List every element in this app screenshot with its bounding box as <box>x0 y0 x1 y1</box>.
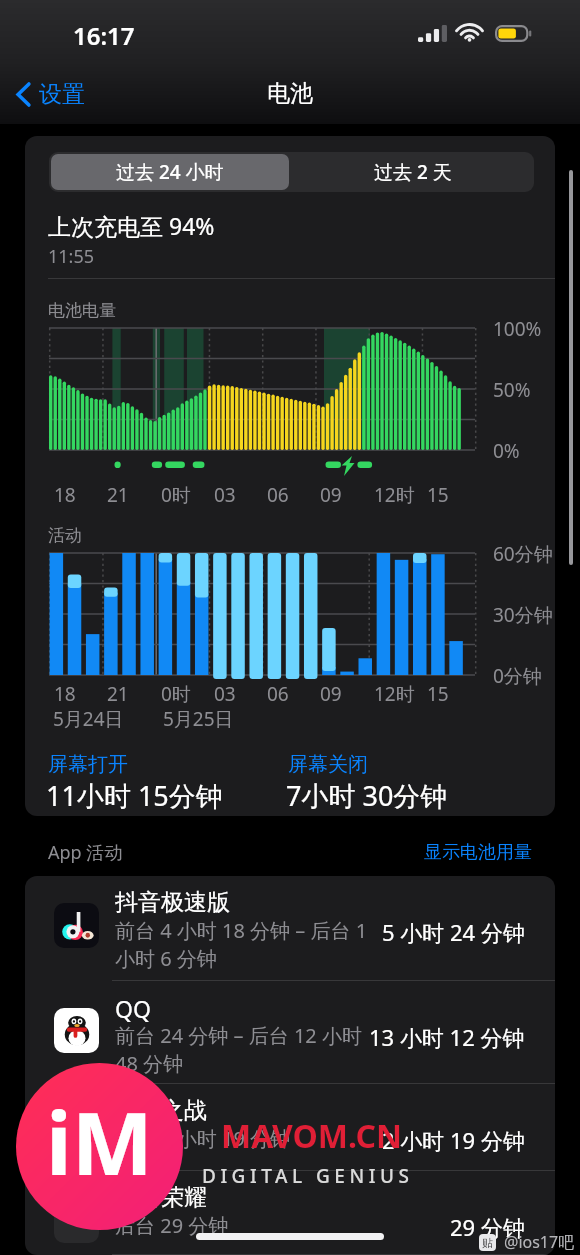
staticText: 小时 6 分钟 <box>115 945 217 972</box>
staticText: 06 <box>267 681 289 707</box>
staticText: 15 <box>427 681 449 707</box>
staticText: 后台 3 小时 19 分钟 <box>115 1125 291 1152</box>
staticText: 48 分钟 <box>115 1050 184 1077</box>
staticText: 5 小时 24 分钟 <box>382 917 525 947</box>
staticText: 09 <box>320 681 342 707</box>
staticText: 21 <box>107 681 129 707</box>
staticText: 16:17 <box>73 19 135 52</box>
button[interactable]: QQ <box>25 981 555 1084</box>
staticText: 设置 <box>39 80 85 109</box>
staticText: 11小时 15分钟 <box>46 777 223 814</box>
staticText: 30分钟 <box>493 602 553 628</box>
staticText: QQ <box>115 993 151 1024</box>
staticText: 后台 29 分钟 <box>115 1212 229 1239</box>
staticText: 电池 <box>267 79 313 108</box>
staticText: 2 小时 19 分钟 <box>382 1125 525 1155</box>
staticText: 06 <box>267 482 289 508</box>
staticText: 15 <box>427 482 449 508</box>
staticText: 50% <box>493 377 531 403</box>
staticText: 抖音极速版 <box>115 888 230 917</box>
staticText: 显示电池用量 <box>424 841 532 864</box>
staticText: 上次充电至 94% <box>48 210 215 241</box>
staticText: 09 <box>320 482 342 508</box>
staticText: 电池电量 <box>48 300 116 321</box>
staticText: 21 <box>107 482 129 508</box>
staticText: 0% <box>493 438 520 464</box>
button[interactable]: 设置 <box>10 72 91 117</box>
staticText: 03 <box>214 482 236 508</box>
staticText: 屏幕打开 <box>48 752 128 777</box>
staticText: 前台 4 小时 18 分钟 – 后台 1 <box>115 917 368 944</box>
staticText: 0时 <box>161 681 191 707</box>
staticText: DIGITAL GENIUS <box>202 1163 414 1189</box>
button[interactable]: 抖音极速版 <box>25 876 555 981</box>
staticText: 03 <box>214 681 236 707</box>
button[interactable]: 王者之战 <box>25 1084 555 1171</box>
staticText: 0时 <box>161 482 191 508</box>
staticText: 13 小时 12 分钟 <box>369 1022 525 1052</box>
staticText: App 活动 <box>48 840 123 865</box>
staticText: 7小时 30分钟 <box>286 777 448 814</box>
staticText: 29 分钟 <box>450 1212 525 1242</box>
staticText: 18 <box>54 482 76 508</box>
staticText: @ios17吧 <box>504 1231 575 1253</box>
staticText: 王者荣耀 <box>115 1183 207 1212</box>
staticText: 贴 <box>482 1236 493 1250</box>
staticText: 过去 24 小时 <box>116 159 224 185</box>
staticText: 60分钟 <box>493 541 553 567</box>
staticText: 18 <box>54 681 76 707</box>
button[interactable]: 过去 24 小时 <box>51 154 289 190</box>
button[interactable]: 显示电池用量 <box>424 841 532 864</box>
staticText: 100% <box>493 316 542 342</box>
staticText: iM <box>46 1083 153 1200</box>
staticText: 12时 <box>374 681 415 707</box>
staticText: 5月24日 <box>53 706 124 732</box>
button[interactable]: 过去 2 天 <box>291 152 534 192</box>
staticText: 活动 <box>48 525 82 546</box>
button[interactable]: 王者荣耀 <box>25 1171 555 1255</box>
staticText: 前台 24 分钟 – 后台 12 小时 <box>115 1022 362 1049</box>
staticText: MAVOM.CN <box>221 1114 402 1158</box>
staticText: 过去 2 天 <box>374 159 452 185</box>
staticText: 12时 <box>374 482 415 508</box>
staticText: 王者之战 <box>115 1096 207 1125</box>
staticText: 屏幕关闭 <box>288 752 368 777</box>
staticText: 0分钟 <box>493 663 542 689</box>
staticText: 5月25日 <box>163 706 234 732</box>
staticText: 11:55 <box>48 244 95 269</box>
